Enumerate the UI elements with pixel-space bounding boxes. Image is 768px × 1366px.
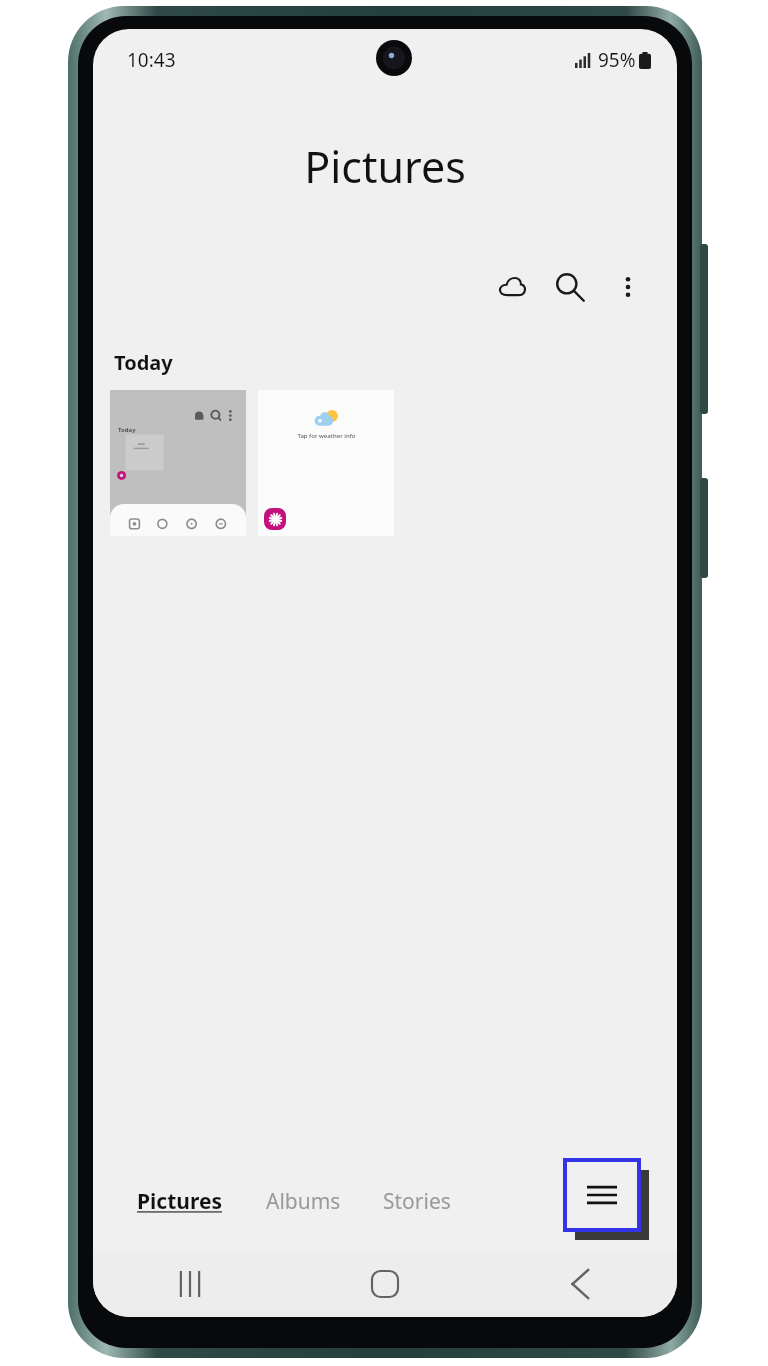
button[interactable]: Cloud — [483, 258, 541, 316]
staticText: Pictures — [304, 137, 466, 196]
button[interactable]: Albums — [266, 1187, 341, 1216]
button[interactable]: Search — [541, 258, 599, 316]
staticText: Tap for weather info — [297, 432, 356, 440]
button[interactable]: Recent apps — [93, 1251, 287, 1317]
staticText: 95% — [598, 47, 636, 73]
button[interactable]: Back — [482, 1251, 677, 1317]
button[interactable]: Stories — [383, 1187, 451, 1216]
staticText: 10:43 — [127, 47, 176, 73]
button[interactable]: Home — [287, 1251, 482, 1317]
button[interactable]: More options — [599, 258, 657, 316]
staticText: Today — [118, 426, 136, 434]
staticText: Today — [114, 349, 173, 376]
button[interactable]: Weather widget screenshot — [258, 390, 394, 536]
staticText: Pictures — [137, 1187, 222, 1216]
button[interactable]: Screenshot — [110, 390, 246, 536]
button[interactable]: Menu — [567, 1162, 637, 1228]
button[interactable]: Pictures — [137, 1187, 222, 1216]
